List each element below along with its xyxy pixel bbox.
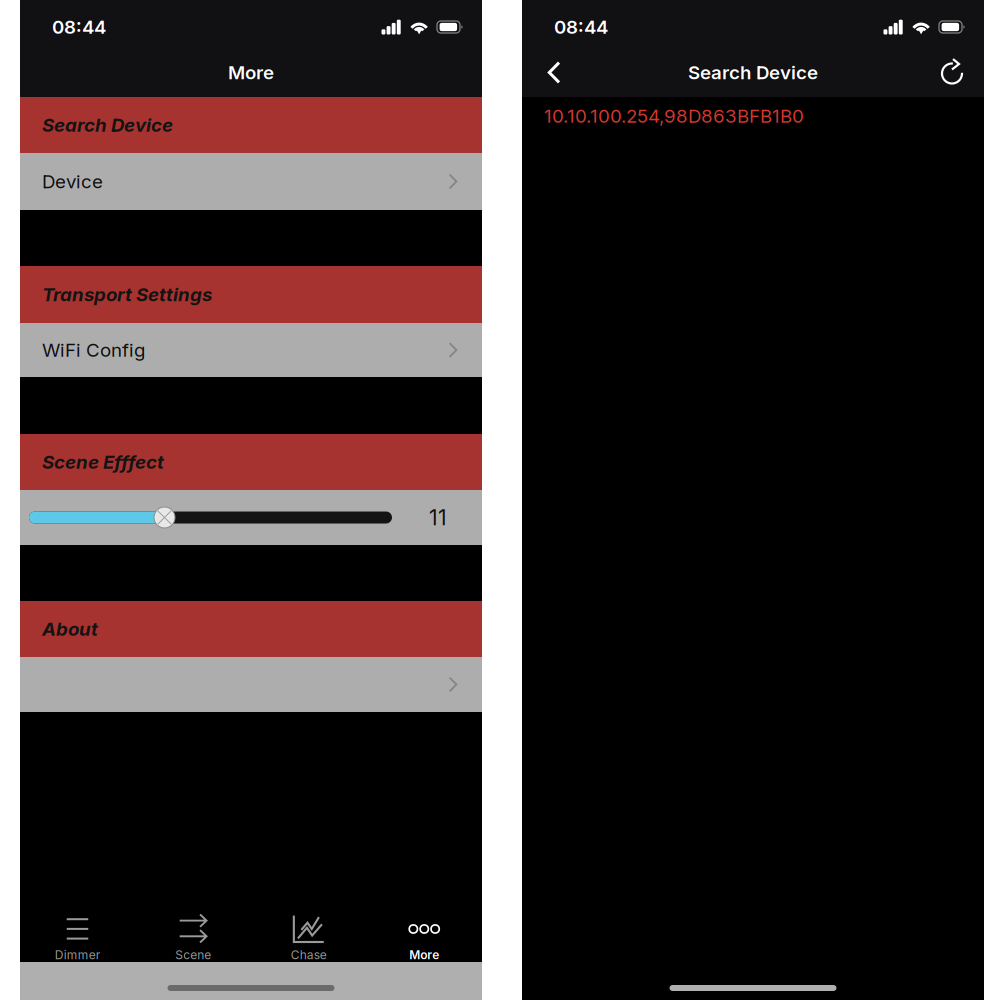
button[interactable]: Device bbox=[20, 153, 482, 210]
staticText: Dimmer bbox=[55, 948, 101, 962]
staticText: Scene Efffect bbox=[42, 451, 164, 473]
staticText: Transport Settings bbox=[42, 283, 212, 306]
staticText: Device bbox=[42, 170, 103, 193]
staticText: More bbox=[409, 948, 439, 962]
button[interactable]: WiFi Config bbox=[20, 323, 482, 377]
staticText: About bbox=[42, 618, 98, 640]
button[interactable]: Refresh bbox=[930, 48, 970, 97]
staticText: WiFi Config bbox=[42, 339, 145, 361]
staticText: Search Device bbox=[688, 61, 818, 84]
staticText: 08:44 bbox=[554, 16, 608, 38]
button[interactable]: Chase bbox=[251, 908, 366, 962]
staticText: 08:44 bbox=[52, 16, 106, 38]
button[interactable]: Scene bbox=[135, 908, 251, 962]
staticText: 11 bbox=[429, 505, 447, 530]
staticText: Search Device bbox=[42, 114, 173, 136]
staticText: More bbox=[228, 61, 274, 84]
button[interactable]: Dimmer bbox=[20, 908, 135, 962]
button[interactable]: Back bbox=[534, 48, 574, 97]
staticText: Chase bbox=[291, 948, 327, 962]
staticText: Scene bbox=[175, 948, 211, 962]
staticText: 10.10.100.254,98D863BFB1B0 bbox=[544, 105, 804, 127]
button[interactable]: More bbox=[366, 908, 482, 962]
